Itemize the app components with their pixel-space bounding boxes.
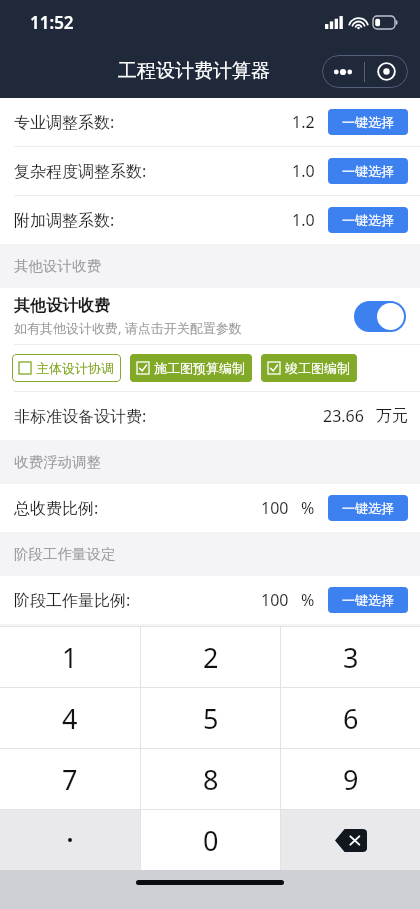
button[interactable]: 9	[281, 749, 420, 809]
staticText: 阶段工作量比例:	[14, 589, 131, 611]
button[interactable]: 一键选择	[328, 495, 408, 521]
staticText: 3	[343, 639, 359, 676]
button[interactable]: 主体设计协调	[12, 354, 121, 382]
staticText: 收费浮动调整	[14, 453, 101, 471]
button[interactable]: 0	[141, 810, 280, 870]
button[interactable]: 一键选择	[328, 109, 408, 135]
button[interactable]: 4	[0, 688, 140, 748]
staticText: 竣工图编制	[285, 360, 350, 376]
staticText: 总收费比例:	[14, 497, 99, 519]
button[interactable]: 2	[141, 627, 280, 687]
staticText: 23.66	[323, 405, 364, 427]
staticText: 主体设计协调	[36, 360, 114, 376]
staticText: 100	[261, 497, 289, 519]
button[interactable]: Close	[365, 55, 408, 88]
staticText: 0	[203, 822, 219, 859]
staticText: 阶段工作量设定	[14, 545, 116, 563]
button[interactable]: 一键选择	[328, 207, 408, 233]
button[interactable]: 复杂程度调整系数:	[0, 147, 420, 195]
staticText: 一键选择	[342, 592, 394, 608]
staticText: 如有其他设计收费, 请点击开关配置参数	[14, 319, 242, 337]
button[interactable]: 3	[281, 627, 420, 687]
staticText: 其他设计收费	[14, 296, 110, 316]
staticText: 8	[203, 761, 219, 798]
button[interactable]: 一键选择	[328, 587, 408, 613]
staticText: 7	[62, 761, 78, 798]
staticText: 专业调整系数:	[14, 111, 115, 133]
staticText: 11:52	[30, 11, 74, 34]
staticText: 非标准设备设计费:	[14, 405, 147, 427]
staticText: 1.2	[292, 111, 315, 133]
staticText: 2	[203, 639, 219, 676]
button[interactable]: Toggle other design fee	[354, 301, 406, 332]
button[interactable]: 竣工图编制	[261, 354, 357, 382]
staticText: 6	[343, 700, 359, 737]
staticText: 100	[261, 589, 289, 611]
staticText: %	[301, 589, 315, 611]
staticText: 1.0	[292, 209, 315, 231]
button[interactable]: 阶段工作量比例:	[0, 576, 420, 624]
staticText: 复杂程度调整系数:	[14, 160, 147, 182]
staticText: 一键选择	[342, 212, 394, 228]
staticText: 施工图预算编制	[154, 360, 245, 376]
button[interactable]: 6	[281, 688, 420, 748]
staticText: 1.0	[292, 160, 315, 182]
button[interactable]: 一键选择	[328, 158, 408, 184]
button[interactable]: More	[322, 55, 364, 88]
staticText: 其他设计收费	[14, 257, 101, 275]
staticText: 一键选择	[342, 163, 394, 179]
button[interactable]	[0, 810, 140, 870]
button[interactable]: 7	[0, 749, 140, 809]
button[interactable]: 非标准设备设计费:	[0, 392, 420, 440]
button[interactable]: 8	[141, 749, 280, 809]
staticText: 5	[203, 700, 219, 737]
staticText: 工程设计费计算器	[118, 59, 270, 83]
staticText: 1	[62, 639, 78, 676]
staticText: 万元	[376, 406, 408, 426]
staticText: 9	[343, 761, 359, 798]
staticText: %	[301, 497, 315, 519]
staticText: 4	[62, 700, 78, 737]
staticText: 一键选择	[342, 114, 394, 130]
button[interactable]: 1	[0, 627, 140, 687]
button[interactable]: 5	[141, 688, 280, 748]
button[interactable]: 附加调整系数:	[0, 196, 420, 244]
button[interactable]: 总收费比例:	[0, 484, 420, 532]
button[interactable]: 施工图预算编制	[130, 354, 252, 382]
button[interactable]: 专业调整系数:	[0, 98, 420, 146]
staticText: 附加调整系数:	[14, 209, 115, 231]
button[interactable]: 其他设计收费	[0, 288, 420, 344]
button[interactable]: Backspace	[281, 810, 420, 870]
staticText: 一键选择	[342, 500, 394, 516]
